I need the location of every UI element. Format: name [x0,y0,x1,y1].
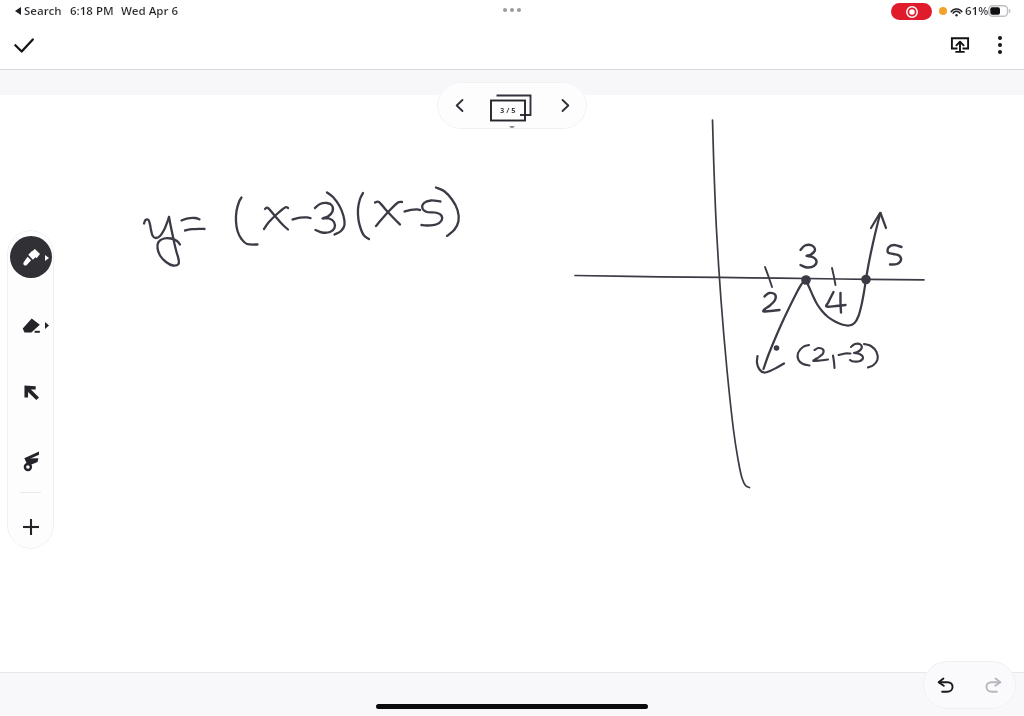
button[interactable]: Pages [481,82,543,129]
button[interactable]: Previous page [437,82,481,129]
staticText: Wed Apr 6 [121,3,179,19]
button[interactable]: Undo [923,661,969,709]
staticText: 61% [965,3,989,19]
button[interactable]: Redo [969,661,1016,709]
button[interactable]: Select tool [10,371,52,413]
staticText: 3 / 5 [500,105,516,115]
staticText: 6:18 PM [70,3,114,19]
button[interactable]: Share [940,25,979,64]
button[interactable]: More options [982,27,1018,63]
button[interactable]: Add [10,506,52,548]
button[interactable]: Pen tool [10,236,52,278]
button[interactable]: Next page [543,82,587,129]
button[interactable]: Lasso tool [10,439,52,481]
staticText: Search [24,3,62,19]
button[interactable]: Done [5,26,43,64]
button[interactable]: Eraser tool [10,304,52,346]
